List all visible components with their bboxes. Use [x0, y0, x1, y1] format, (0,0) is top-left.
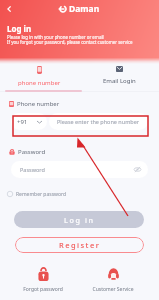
staticText: Log in	[7, 23, 32, 34]
staticText: Customer Service	[92, 286, 134, 293]
button[interactable]: Email Login	[79, 63, 159, 90]
staticText: Phone number	[17, 100, 60, 108]
staticText: Password	[20, 166, 45, 173]
staticText: phone number	[18, 79, 61, 87]
button[interactable]: Remember password	[7, 189, 159, 199]
staticText: Please log in with your phone number or …	[7, 34, 104, 40]
staticText: +91	[17, 118, 28, 126]
staticText: Log in	[64, 215, 95, 225]
button[interactable]: Customer Service	[78, 267, 148, 293]
staticText: If you forgot your password, please cont…	[7, 39, 133, 45]
button[interactable]: Please enter the phone number	[49, 113, 148, 130]
staticText: Password	[18, 148, 46, 156]
staticText: Please enter the phone number	[57, 118, 140, 125]
staticText: Forgot password	[23, 286, 63, 293]
staticText: Remember password	[16, 191, 67, 198]
button[interactable]: Forgot password	[8, 267, 78, 293]
button[interactable]: Show password	[134, 166, 141, 173]
button[interactable]: Log in	[14, 211, 144, 228]
staticText: Register	[59, 240, 101, 250]
staticText: Email Login	[103, 77, 136, 85]
button[interactable]: Back	[3, 3, 15, 15]
button[interactable]: Password	[11, 161, 148, 178]
button[interactable]: +91	[11, 113, 47, 130]
button[interactable]: Register	[15, 237, 144, 253]
staticText: Daman	[69, 3, 100, 15]
button[interactable]: phone number	[0, 63, 79, 90]
